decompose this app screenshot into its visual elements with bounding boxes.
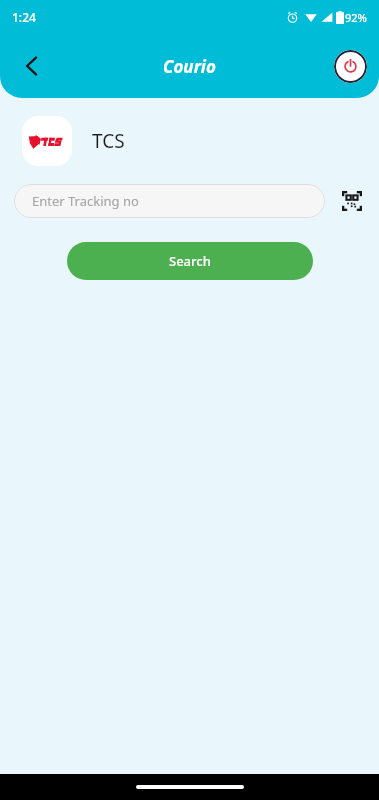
staticText: 1:24 <box>12 9 36 25</box>
staticText: Courio <box>163 55 216 78</box>
staticText: Enter Tracking no <box>32 192 139 210</box>
button[interactable]: Scan QR code <box>337 186 367 216</box>
button[interactable]: Power <box>334 50 367 83</box>
staticText: Search <box>169 252 211 270</box>
button[interactable]: Back <box>8 42 56 90</box>
button[interactable]: Enter Tracking no <box>14 184 325 218</box>
staticText: 92% <box>345 10 367 25</box>
button[interactable]: TCS <box>22 116 357 166</box>
staticText: TCS <box>92 128 125 154</box>
button[interactable]: Search <box>67 242 313 280</box>
